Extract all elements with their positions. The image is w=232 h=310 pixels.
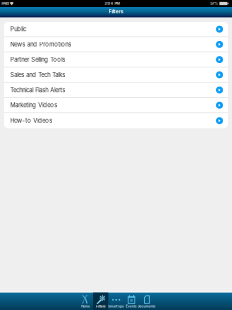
- staticText: Technical Flash Alerts: [10, 86, 65, 94]
- staticText: SmartTips: [108, 304, 124, 308]
- button[interactable]: Events: [124, 293, 139, 310]
- button[interactable]: How-to Videos: [4, 113, 228, 128]
- staticText: News and Promotions: [10, 41, 71, 48]
- staticText: Documents: [138, 304, 156, 308]
- staticText: How-to Videos: [10, 117, 52, 124]
- staticText: 2:04 PM: [104, 1, 119, 6]
- button[interactable]: Documents: [139, 293, 154, 310]
- staticText: Public: [10, 26, 26, 33]
- button[interactable]: Public: [4, 22, 228, 37]
- button[interactable]: SmartTips: [108, 293, 124, 310]
- staticText: Filters: [96, 304, 106, 308]
- button[interactable]: Technical Flash Alerts: [4, 83, 228, 98]
- staticText: iPad: [1, 1, 8, 6]
- button[interactable]: Filters: [93, 293, 108, 310]
- button[interactable]: Partner Selling Tools: [4, 52, 228, 68]
- button[interactable]: Home: [78, 293, 93, 310]
- staticText: Partner Selling Tools: [10, 56, 65, 63]
- button[interactable]: Sales and Tech Talks: [4, 68, 228, 83]
- button[interactable]: Marketing Videos: [4, 98, 228, 113]
- staticText: 57%: [210, 1, 218, 6]
- staticText: Sales and Tech Talks: [10, 71, 65, 78]
- button[interactable]: News and Promotions: [4, 37, 228, 52]
- staticText: Filters: [108, 8, 123, 14]
- staticText: Home: [81, 304, 90, 308]
- staticText: Marketing Videos: [10, 102, 57, 109]
- staticText: Events: [126, 304, 137, 308]
